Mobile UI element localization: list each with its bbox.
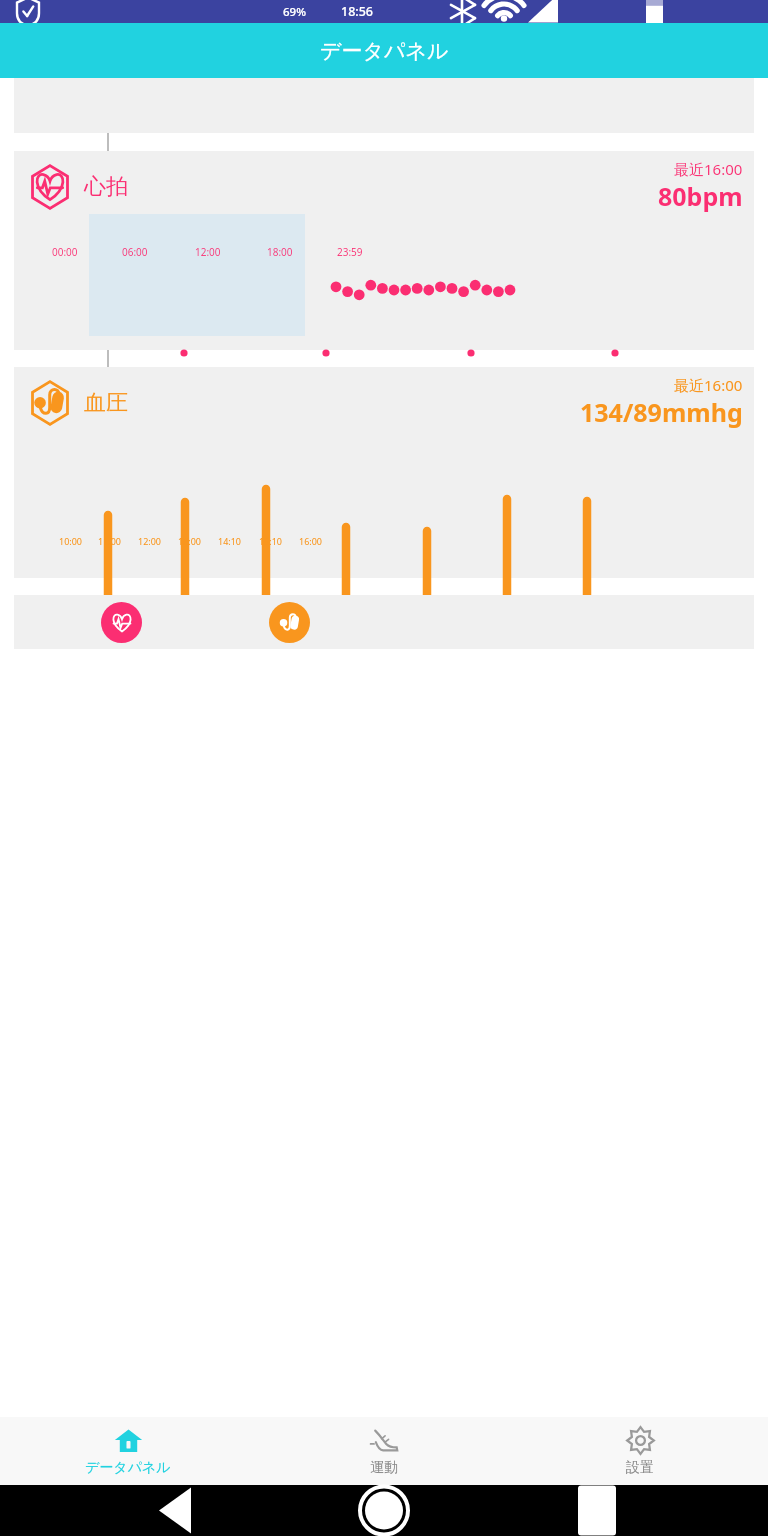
staticText: データパネル xyxy=(85,1459,171,1477)
button[interactable]: 血圧 xyxy=(14,367,754,578)
staticText: データパネル xyxy=(320,38,449,64)
staticText: 最近16:00 xyxy=(674,375,743,395)
staticText: 最近16:00 xyxy=(674,159,743,179)
staticText: 12:00 xyxy=(138,535,162,547)
button[interactable]: 運動 xyxy=(256,1417,512,1485)
staticText: 134/89mmhg xyxy=(580,395,743,429)
staticText: 12:00 xyxy=(195,245,221,259)
button[interactable]: Add blood pressure xyxy=(269,602,310,643)
staticText: 13:00 xyxy=(178,535,202,547)
staticText: 18:00 xyxy=(267,245,293,259)
staticText: 06:00 xyxy=(122,245,148,259)
staticText: 10:00 xyxy=(59,535,83,547)
staticText: 血圧 xyxy=(84,389,128,417)
staticText: 80bpm xyxy=(658,179,743,213)
button[interactable]: Add heart rate xyxy=(101,602,142,643)
staticText: 23:59 xyxy=(337,245,363,259)
staticText: 14:10 xyxy=(218,535,242,547)
button[interactable]: データパネル xyxy=(0,1417,256,1485)
button[interactable]: 心拍 xyxy=(14,151,754,350)
staticText: 00:00 xyxy=(52,245,78,259)
staticText: 11:00 xyxy=(98,535,122,547)
staticText: 69% xyxy=(283,4,306,20)
staticText: 18:56 xyxy=(341,3,374,20)
staticText: 設置 xyxy=(626,1459,654,1477)
staticText: 15:10 xyxy=(259,535,283,547)
staticText: 16:00 xyxy=(299,535,323,547)
staticText: 心拍 xyxy=(84,173,128,201)
staticText: 運動 xyxy=(370,1459,398,1477)
button[interactable]: 設置 xyxy=(512,1417,768,1485)
